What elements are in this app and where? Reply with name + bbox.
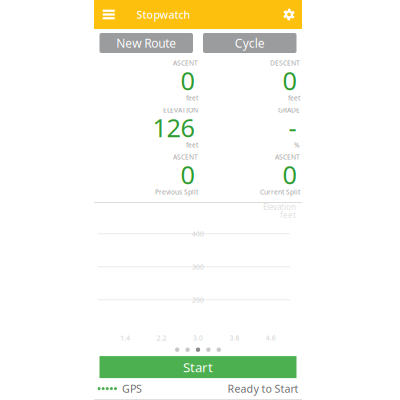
staticText: Ready to Start [227, 381, 298, 396]
staticText: 0 [180, 64, 194, 97]
staticText: New Route [116, 35, 176, 51]
staticText: ELEVATION [163, 106, 198, 114]
staticText: feet [186, 141, 198, 149]
staticText: 300 [192, 262, 204, 271]
staticText: GRADE [278, 106, 300, 114]
staticText: feet [288, 94, 300, 102]
staticText: 126 [152, 111, 194, 144]
staticText: ASCENT [173, 59, 198, 67]
staticText: Stopwatch [136, 7, 190, 22]
staticText: ASCENT [275, 153, 300, 161]
button[interactable]: Start [99, 356, 296, 378]
staticText: Elevation [263, 202, 296, 212]
staticText: 4.6 [266, 334, 276, 342]
staticText: Cycle [235, 35, 265, 51]
staticText: ASCENT [173, 153, 198, 161]
button[interactable]: Menu [94, 0, 123, 29]
staticText: Start [183, 358, 213, 376]
staticText: feet [186, 94, 198, 102]
button[interactable]: Settings [276, 0, 302, 29]
staticText: - [288, 111, 296, 144]
staticText: 2.2 [157, 334, 167, 342]
staticText: feet [280, 210, 296, 220]
staticText: 200 [192, 295, 204, 304]
staticText: % [294, 141, 300, 149]
staticText: Current Split [260, 188, 300, 196]
staticText: 0 [282, 64, 296, 97]
button[interactable]: New Route [99, 33, 193, 53]
staticText: 0 [282, 158, 296, 191]
staticText: DESCENT [270, 59, 300, 67]
staticText: 3.8 [229, 334, 239, 342]
staticText: 3.0 [193, 334, 203, 342]
staticText: GPS [122, 381, 142, 396]
staticText: 0 [180, 158, 194, 191]
button[interactable]: Cycle [203, 33, 296, 53]
staticText: 400 [192, 229, 204, 238]
staticText: 1.4 [120, 334, 130, 342]
staticText: Previous Split [155, 188, 198, 196]
